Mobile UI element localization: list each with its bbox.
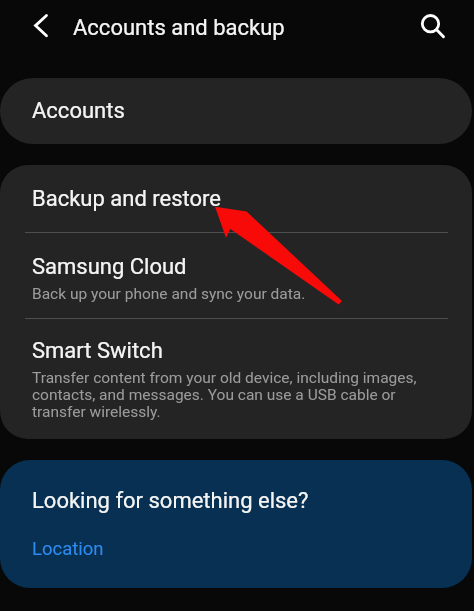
- button[interactable]: Back: [18, 4, 64, 48]
- staticText: Smart Switch: [32, 338, 163, 364]
- button[interactable]: Search: [409, 2, 453, 50]
- staticText: Transfer content from your old device, i…: [32, 369, 437, 420]
- staticText: Location: [32, 538, 104, 560]
- button[interactable]: Backup and restore: [0, 165, 472, 232]
- staticText: Back up your phone and sync your data.: [32, 285, 306, 303]
- staticText: Backup and restore: [32, 186, 221, 212]
- button[interactable]: Location: [32, 538, 104, 560]
- staticText: Samsung Cloud: [32, 254, 187, 280]
- staticText: Accounts: [32, 98, 125, 124]
- staticText: Looking for something else?: [32, 488, 309, 514]
- button[interactable]: Smart Switch: [0, 319, 472, 439]
- staticText: Accounts and backup: [73, 15, 285, 41]
- button[interactable]: Accounts: [0, 78, 472, 144]
- button[interactable]: Samsung Cloud: [0, 233, 472, 318]
